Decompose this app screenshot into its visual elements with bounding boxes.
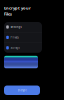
staticText: Privacy <box>10 36 18 39</box>
staticText: Encrypt <box>17 88 26 92</box>
button[interactable]: Encrypt <box>4 85 40 95</box>
button[interactable]: Settings <box>4 22 42 32</box>
staticText: Encrypt your <box>4 5 31 11</box>
staticText: Files <box>4 11 12 17</box>
button[interactable]: Privacy <box>4 32 42 42</box>
staticText: Storage <box>10 46 20 49</box>
staticText: Settings <box>10 25 21 29</box>
button[interactable]: Storage <box>4 43 42 53</box>
